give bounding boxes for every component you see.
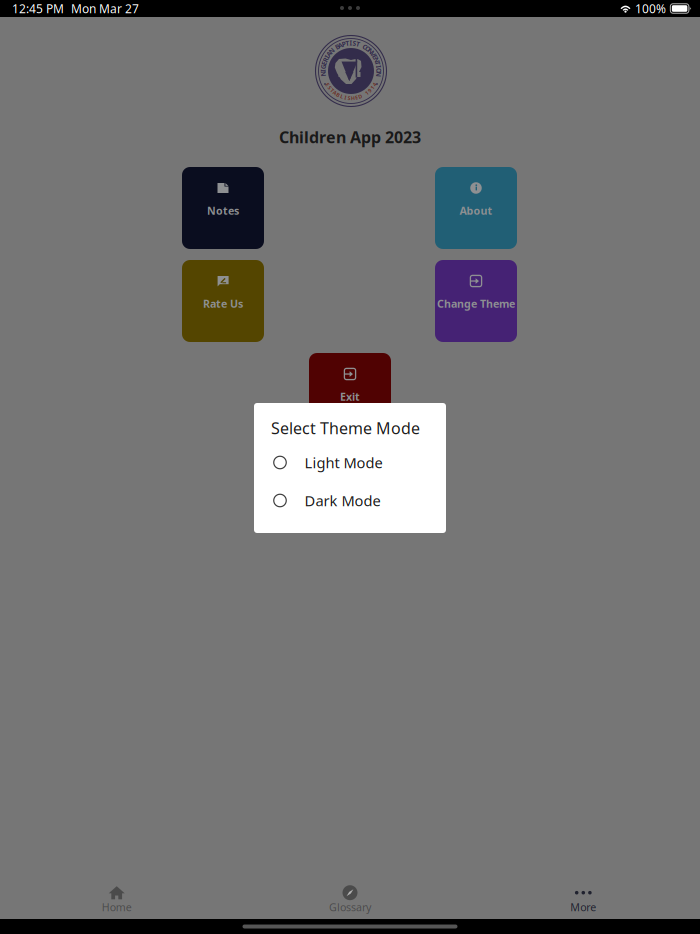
staticText: S xyxy=(328,84,331,91)
staticText: D xyxy=(358,93,362,100)
button[interactable]: Home xyxy=(57,882,177,920)
staticText: P xyxy=(342,39,346,48)
staticText: S xyxy=(348,94,351,101)
staticText: A xyxy=(326,49,331,58)
staticText: O xyxy=(376,66,381,75)
staticText: G xyxy=(321,62,326,71)
staticText: T xyxy=(376,59,380,68)
button[interactable]: Notes xyxy=(182,167,264,249)
staticText: B xyxy=(335,42,339,51)
staticText: S xyxy=(353,39,357,48)
button[interactable]: About xyxy=(435,167,517,249)
staticText: A xyxy=(338,41,343,49)
staticText: I xyxy=(325,52,328,61)
staticText: T xyxy=(331,87,334,94)
staticText: N xyxy=(329,46,334,55)
staticText: About xyxy=(459,203,492,218)
staticText: E xyxy=(322,59,326,68)
staticText: 4 xyxy=(373,81,376,88)
staticText: A xyxy=(333,89,337,96)
staticText: N xyxy=(374,55,379,64)
staticText: Glossary xyxy=(329,900,371,914)
button[interactable]: More xyxy=(523,882,643,920)
staticText: E xyxy=(326,81,329,88)
staticText: V xyxy=(371,49,375,58)
staticText: 100% xyxy=(635,0,666,16)
staticText: Mon Mar 27 xyxy=(71,0,139,16)
staticText: Select Theme Mode xyxy=(271,417,420,439)
staticText xyxy=(361,41,363,49)
staticText: 1 xyxy=(365,89,368,96)
staticText: T xyxy=(345,39,349,48)
button[interactable]: Change Theme xyxy=(435,260,517,342)
button[interactable]: Glossary xyxy=(290,882,410,920)
staticText: N xyxy=(321,69,326,78)
staticText: H xyxy=(351,94,355,101)
staticText: Change Theme xyxy=(437,296,515,311)
button[interactable]: Rate Us xyxy=(182,260,264,342)
staticText: I xyxy=(377,62,380,71)
staticText: E xyxy=(373,52,377,61)
staticText: R xyxy=(323,55,327,64)
staticText: T xyxy=(356,39,360,48)
staticText: B xyxy=(336,91,340,98)
staticText: Exit xyxy=(340,389,360,404)
staticText: Dark Mode xyxy=(304,491,380,510)
staticText: Home xyxy=(102,900,132,914)
staticText: L xyxy=(340,93,343,100)
staticText: E xyxy=(355,94,358,101)
staticText: N xyxy=(368,46,373,55)
staticText: I xyxy=(321,66,324,75)
staticText: 12:45 PM xyxy=(12,0,64,16)
staticText: O xyxy=(365,44,370,53)
staticText: Rate Us xyxy=(203,296,243,311)
button[interactable]: Exit xyxy=(309,353,391,435)
staticText: N xyxy=(376,69,381,78)
staticText: 1 xyxy=(371,84,374,91)
staticText: I xyxy=(344,94,346,101)
staticText: Children App 2023 xyxy=(279,126,421,148)
staticText: Light Mode xyxy=(304,453,382,472)
staticText: Notes xyxy=(207,203,239,218)
staticText: I xyxy=(349,39,352,47)
button[interactable]: Dark Mode xyxy=(254,481,446,519)
button[interactable]: Light Mode xyxy=(254,443,446,481)
staticText xyxy=(333,44,335,53)
staticText: 9 xyxy=(368,87,371,94)
staticText: More xyxy=(570,900,596,914)
staticText: C xyxy=(363,42,367,51)
